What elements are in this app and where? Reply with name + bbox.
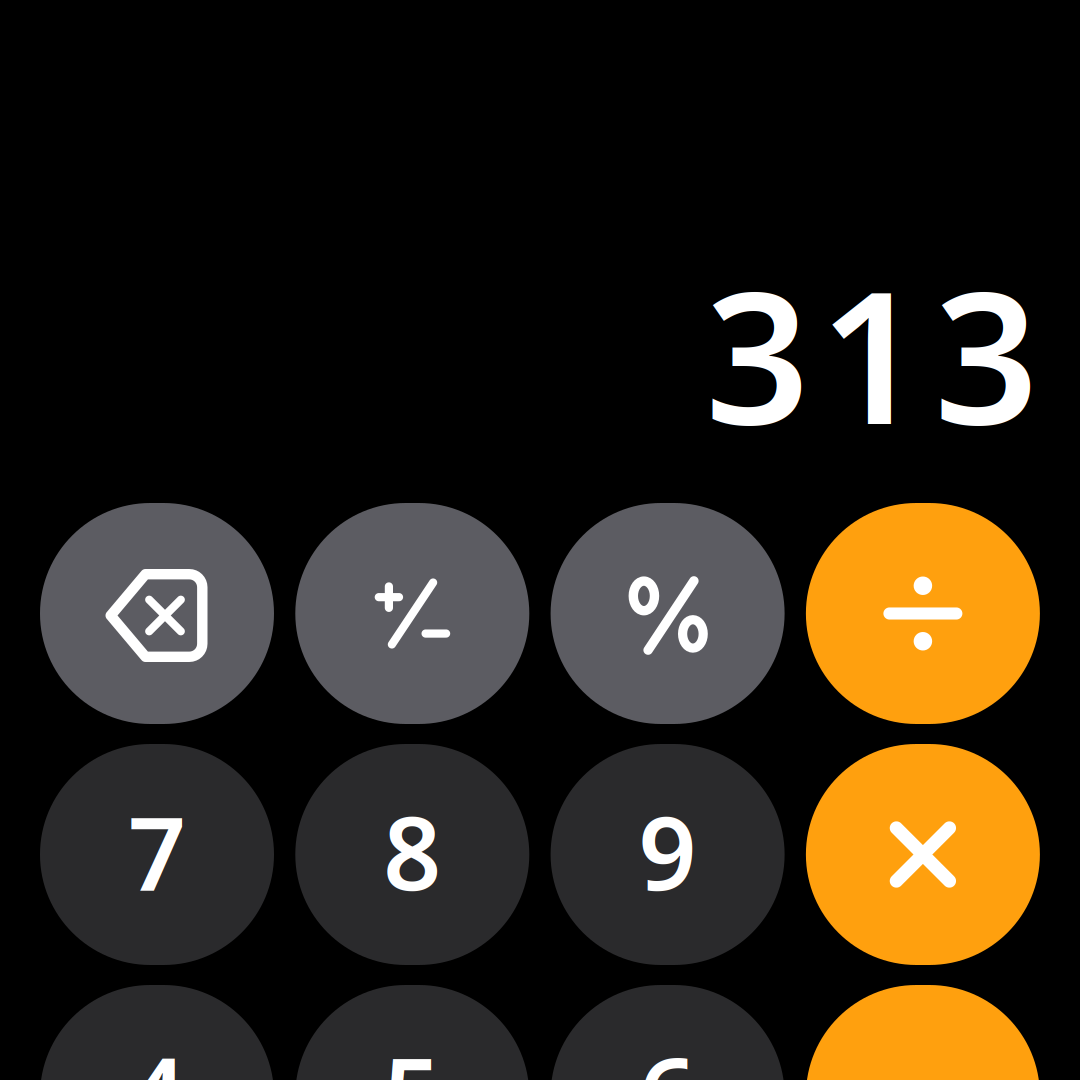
button[interactable]: Multiply	[806, 744, 1040, 965]
button[interactable]: Delete	[40, 503, 274, 724]
button[interactable]: Percent	[551, 503, 785, 724]
button[interactable]: Minus	[806, 985, 1040, 1080]
staticText: 4	[128, 1025, 186, 1080]
button[interactable]: Plus Minus	[295, 503, 529, 724]
staticText: 313	[705, 232, 1038, 474]
button[interactable]: Divide	[806, 503, 1040, 724]
staticText: 8	[383, 784, 441, 918]
button[interactable]: 7	[40, 744, 274, 965]
button[interactable]: 4	[40, 985, 274, 1080]
button[interactable]: 8	[295, 744, 529, 965]
button[interactable]: 5	[295, 985, 529, 1080]
staticText: 7	[128, 784, 186, 918]
button[interactable]: 9	[551, 744, 785, 965]
staticText: 6	[639, 1025, 697, 1080]
staticText: 9	[639, 784, 697, 918]
staticText: 5	[383, 1025, 441, 1080]
button[interactable]: 6	[551, 985, 785, 1080]
